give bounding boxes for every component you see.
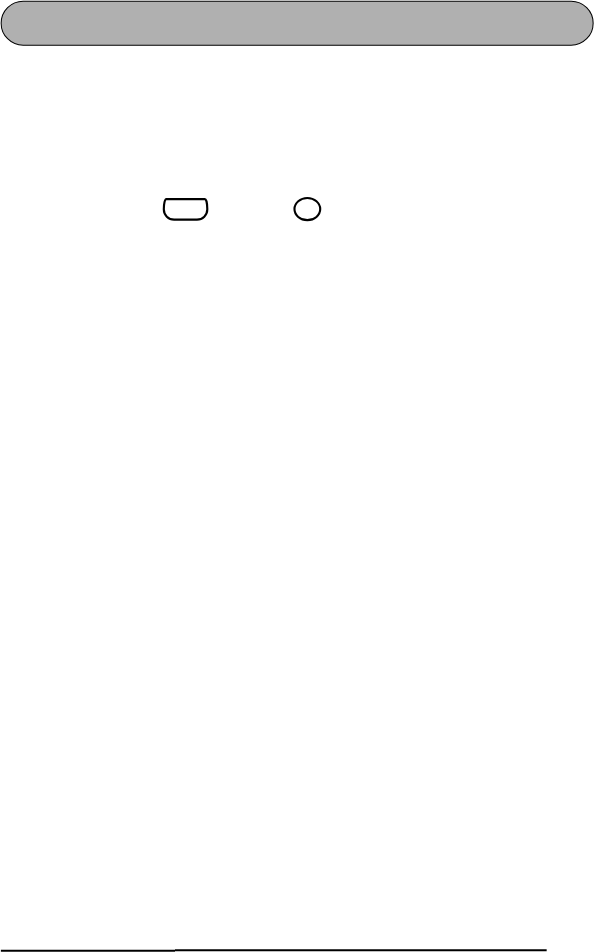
button[interactable]: Search <box>1 1 593 45</box>
button[interactable]: Record <box>293 197 321 221</box>
button[interactable]: Toggle <box>163 198 209 221</box>
